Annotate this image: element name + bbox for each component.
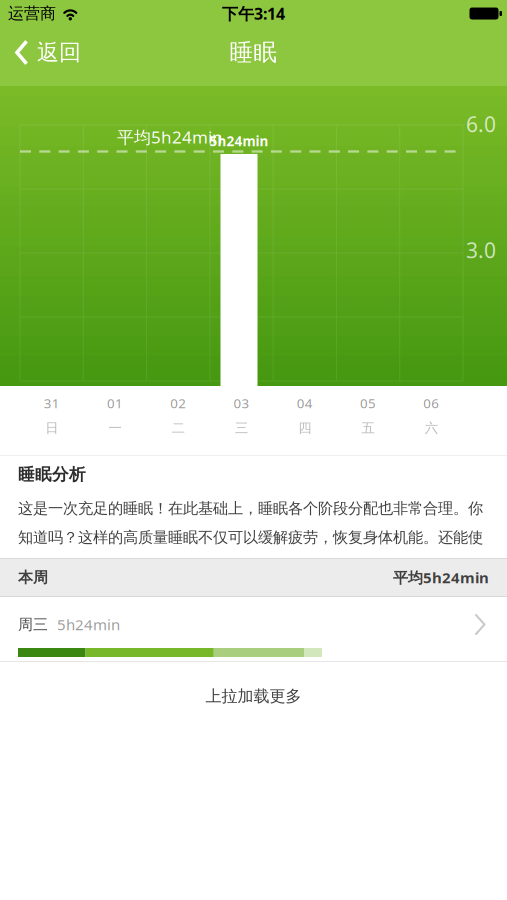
staticText: 四	[298, 420, 311, 436]
staticText: 睡眠	[229, 38, 277, 67]
staticText: 6.0	[466, 110, 496, 138]
staticText: 本周	[18, 568, 48, 587]
staticText: 二	[172, 420, 185, 436]
staticText: 5h24min	[209, 132, 268, 150]
staticText: 5h24min	[57, 614, 120, 635]
button[interactable]: 周三	[0, 597, 507, 662]
staticText: 日	[45, 420, 58, 436]
staticText: 上拉加载更多	[205, 686, 301, 706]
staticText: 05	[360, 394, 376, 412]
staticText: 下午3:14	[222, 3, 285, 24]
button[interactable]: 上拉加载更多	[205, 662, 301, 706]
staticText: 睡眠分析	[18, 464, 86, 485]
staticText: 3.0	[466, 236, 496, 264]
staticText: 运营商	[8, 3, 56, 24]
staticText: 01	[107, 394, 123, 412]
staticText: 03	[233, 394, 249, 412]
staticText: 平均5h24min	[117, 125, 223, 149]
staticText: 返回	[37, 39, 81, 66]
staticText: 三	[235, 420, 248, 436]
staticText: 一	[108, 420, 121, 436]
staticText: 六	[425, 420, 438, 436]
staticText: 平均5h24min	[393, 567, 489, 588]
staticText: 知道吗？这样的高质量睡眠不仅可以缓解疲劳，恢复身体机能。还能使	[18, 528, 483, 547]
staticText: 周三	[18, 615, 48, 634]
staticText: 31	[44, 394, 60, 412]
staticText: 五	[362, 420, 375, 436]
staticText: 06	[423, 394, 439, 412]
button[interactable]: 返回	[0, 43, 81, 70]
staticText: 这是一次充足的睡眠！在此基础上，睡眠各个阶段分配也非常合理。你	[18, 499, 483, 518]
staticText: 04	[297, 394, 313, 412]
staticText: 02	[170, 394, 186, 412]
